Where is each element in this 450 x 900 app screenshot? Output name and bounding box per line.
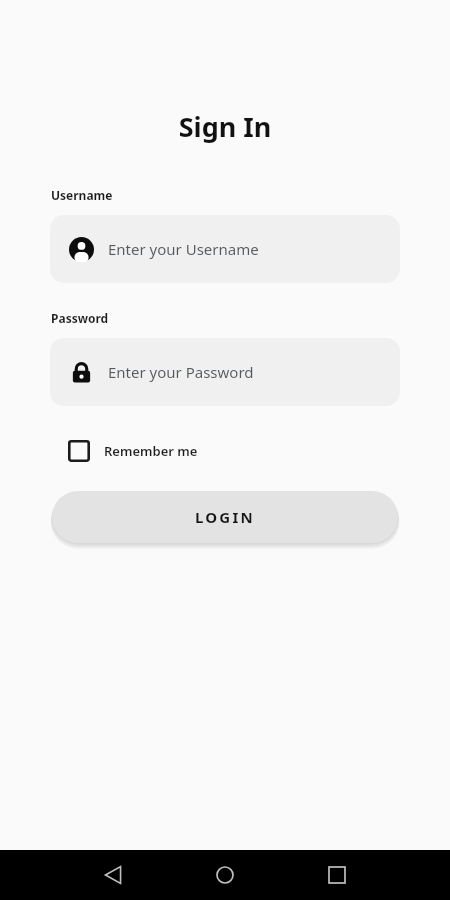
button[interactable]: Home <box>203 853 247 897</box>
button[interactable]: Remember me <box>60 434 206 468</box>
button[interactable]: Enter your Password <box>50 338 400 406</box>
button[interactable]: LOGIN <box>52 491 398 543</box>
staticText: Enter your Username <box>108 239 259 259</box>
staticText: Password <box>51 310 109 326</box>
staticText: Username <box>51 187 113 203</box>
staticText: Remember me <box>104 442 198 460</box>
staticText: Enter your Password <box>108 362 254 382</box>
staticText: Sign In <box>0 108 450 145</box>
button[interactable]: Recent apps <box>315 853 359 897</box>
button[interactable]: Enter your Username <box>50 215 400 283</box>
button[interactable]: Back <box>91 853 135 897</box>
staticText: LOGIN <box>195 507 255 527</box>
